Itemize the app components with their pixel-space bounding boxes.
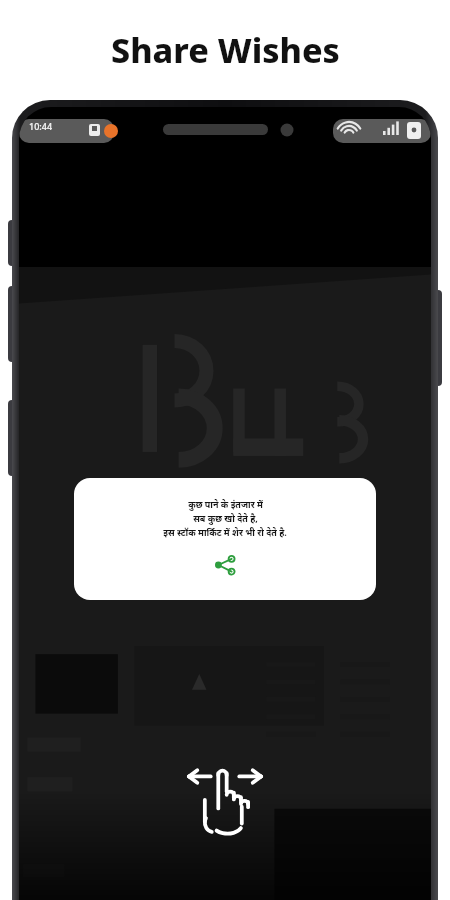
staticText: 10:44	[29, 120, 53, 132]
other: Swipe left or right	[180, 755, 270, 845]
staticText: इस स्टॉक मार्किट में शेर भी रो देते है.	[163, 526, 287, 538]
staticText: Share Wishes	[111, 27, 340, 73]
staticText: कुछ पाने के इंतजार में	[188, 498, 263, 510]
staticText: सब कुछ खो देते है,	[193, 512, 258, 524]
button[interactable]: कुछ पाने के इंतजार में	[74, 478, 376, 600]
button[interactable]: Share	[210, 550, 240, 580]
